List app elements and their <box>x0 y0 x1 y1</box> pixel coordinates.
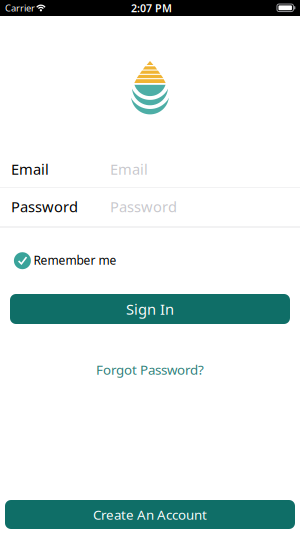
staticText: Password <box>11 197 78 216</box>
button[interactable]: Sign In <box>10 294 290 324</box>
staticText: Forgot Password? <box>96 361 204 378</box>
button[interactable]: Create An Account <box>5 500 295 529</box>
staticText: Create An Account <box>93 506 207 523</box>
staticText: 2:07 PM <box>131 1 172 15</box>
button[interactable]: Remember me <box>0 245 300 275</box>
staticText: Email <box>110 159 148 179</box>
staticText: Remember me <box>33 252 116 268</box>
button[interactable]: Forgot Password? <box>96 361 204 378</box>
button[interactable]: Password <box>0 187 300 225</box>
staticText: Password <box>110 197 177 216</box>
staticText: Carrier <box>5 2 35 14</box>
staticText: Email <box>11 159 49 179</box>
staticText: Sign In <box>126 299 174 319</box>
button[interactable]: Email <box>0 150 300 187</box>
